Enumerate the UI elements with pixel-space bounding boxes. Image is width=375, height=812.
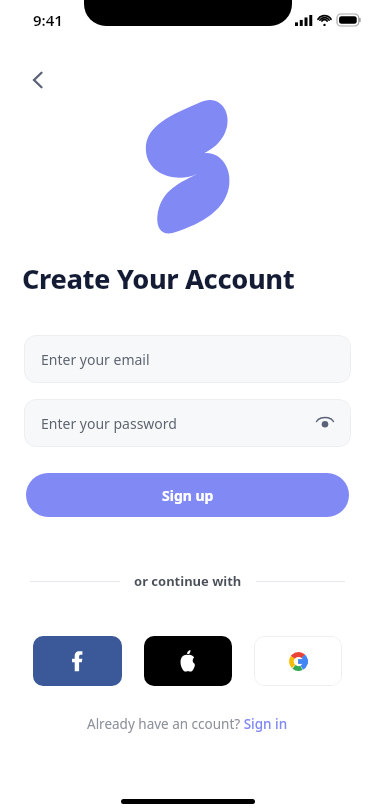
staticText: Enter your email: [41, 350, 150, 369]
staticText: Enter your password: [41, 414, 177, 433]
staticText: Create Your Account: [22, 260, 295, 297]
button[interactable]: Show password: [309, 407, 341, 439]
button[interactable]: Sign up with Apple: [144, 636, 232, 686]
button[interactable]: Already have an ccount? Sign in: [0, 715, 375, 733]
button[interactable]: Sign up with Facebook: [33, 636, 122, 686]
staticText: Sign up: [162, 486, 214, 505]
staticText: or continue with: [134, 572, 242, 590]
staticText: Already have an ccount? Sign in: [87, 715, 288, 733]
button[interactable]: Enter your email: [24, 335, 351, 383]
button[interactable]: Back: [18, 60, 58, 100]
button[interactable]: Sign up: [26, 473, 349, 517]
button[interactable]: Sign up with Google: [254, 636, 342, 686]
staticText: 9:41: [33, 10, 63, 30]
button[interactable]: Enter your password: [24, 399, 351, 447]
